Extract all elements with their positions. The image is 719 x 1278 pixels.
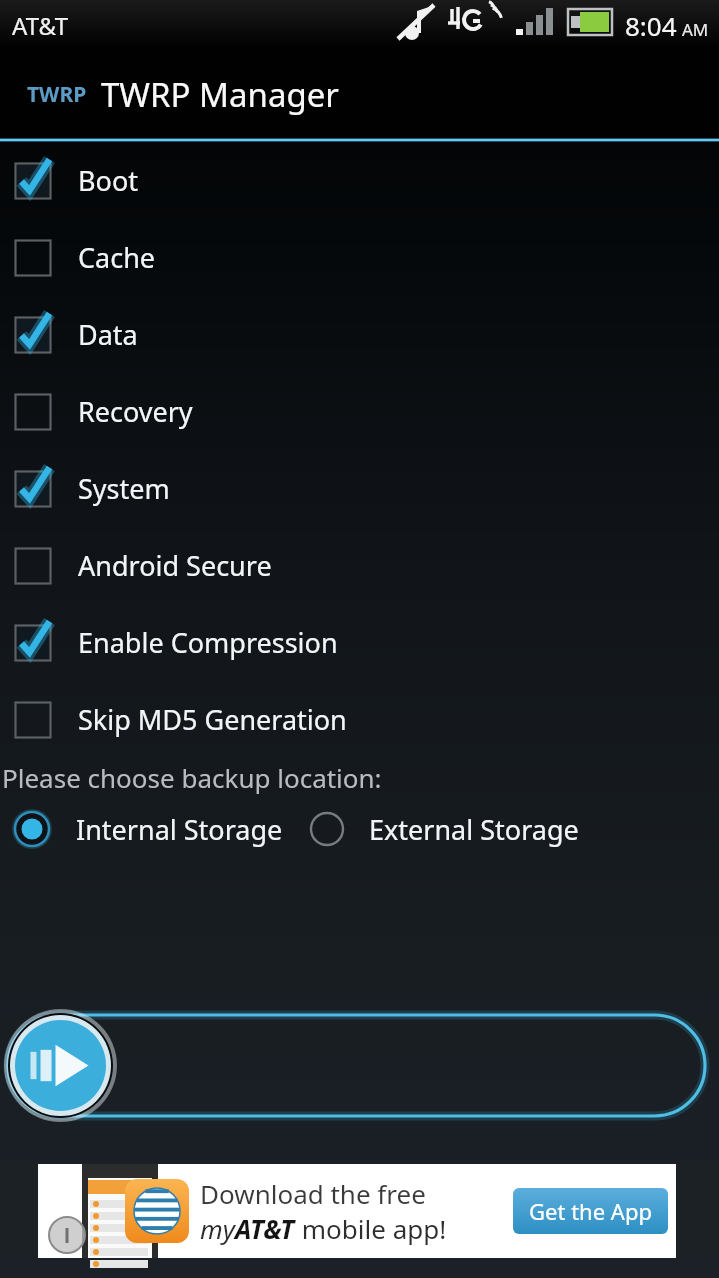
staticText: mobile app! [295,1211,447,1246]
button[interactable]: Internal Storage [0,807,283,851]
button[interactable]: Download the free [38,1164,676,1258]
staticText: TWRP [27,80,87,109]
staticText: Recovery [78,393,193,430]
staticText: AT&T [235,1211,295,1246]
button[interactable]: Enable Compression [0,604,719,681]
staticText: Internal Storage [76,811,283,848]
staticText: Android Secure [78,547,272,584]
staticText: Enable Compression [78,624,338,661]
staticText: System [78,470,170,507]
staticText: TWRP Manager [101,72,339,117]
button[interactable]: Skip MD5 Generation [0,681,719,758]
staticText: Cache [78,239,156,276]
button[interactable]: Get the App [513,1188,668,1234]
staticText: 8:04 [625,8,677,43]
staticText: Data [78,316,138,353]
button[interactable]: Android Secure [0,527,719,604]
button[interactable]: System [0,450,719,527]
staticText: External Storage [369,811,579,848]
button[interactable]: Data [0,296,719,373]
staticText: Boot [78,162,138,199]
staticText: Get the App [529,1196,652,1226]
staticText: my [200,1211,235,1246]
button[interactable]: Cache [0,219,719,296]
staticText: AT&T [12,9,68,42]
button[interactable]: Recovery [0,373,719,450]
staticText: Please choose backup location: [2,760,382,795]
staticText: AM [682,18,709,41]
button[interactable]: External Storage [305,807,579,851]
staticText: Download the free [200,1176,426,1211]
staticText: Skip MD5 Generation [78,701,347,738]
button[interactable]: Boot [0,142,719,219]
button[interactable]: Swipe to start backup [0,1005,719,1140]
